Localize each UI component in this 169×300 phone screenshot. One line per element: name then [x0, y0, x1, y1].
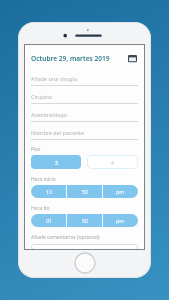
button[interactable]: 01 — [31, 214, 138, 227]
staticText: 50 — [82, 188, 88, 195]
staticText: 10 — [46, 188, 52, 195]
button[interactable]: Nombre del paciente — [31, 125, 138, 143]
button[interactable]: Cirujano — [31, 89, 138, 107]
button[interactable]: 3 — [31, 155, 81, 169]
button[interactable]: Seleccionar fecha — [127, 53, 138, 64]
staticText: Hora inicio — [31, 176, 56, 183]
button[interactable] — [31, 244, 138, 250]
button[interactable]: Añade una cirugía — [31, 71, 138, 89]
staticText: Piso — [31, 146, 41, 153]
staticText: 50 — [82, 217, 88, 224]
staticText: Octubre 29, martes 2019 — [31, 54, 127, 63]
staticText: Añade una cirugía — [31, 75, 77, 82]
button[interactable]: Home — [74, 252, 96, 274]
button[interactable]: 4 — [87, 155, 138, 169]
staticText: Anestesiólogo — [31, 111, 67, 118]
staticText: Cirujano — [31, 93, 53, 100]
staticText: 4 — [111, 159, 114, 166]
staticText: 3 — [55, 159, 58, 166]
staticText: Hora fin — [31, 205, 50, 212]
staticText: pm — [116, 217, 125, 224]
staticText: pm — [116, 188, 125, 195]
button[interactable]: Anestesiólogo — [31, 107, 138, 125]
button[interactable]: 10 — [31, 185, 138, 198]
staticText: Nombre del paciente — [31, 129, 85, 136]
staticText: Añade comentarios (opcional) — [31, 234, 100, 241]
staticText: 01 — [46, 217, 52, 224]
